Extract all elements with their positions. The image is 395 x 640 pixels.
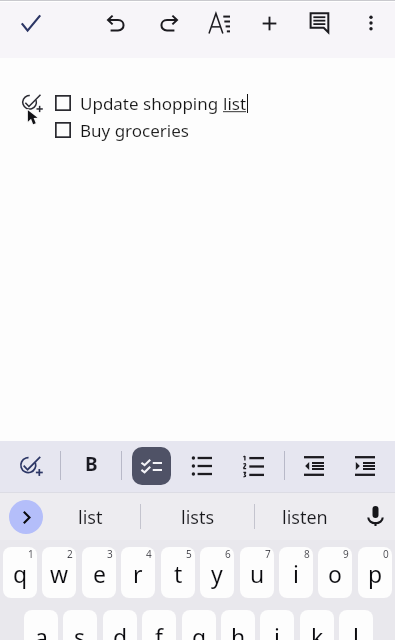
staticText: 9 [343, 547, 349, 561]
staticText: 7 [265, 547, 271, 561]
button[interactable]: lists [150, 497, 246, 537]
staticText: Update shopping [80, 92, 223, 114]
button[interactable]: More options [349, 1, 393, 45]
button[interactable]: i [279, 547, 313, 598]
staticText: 6 [225, 547, 231, 561]
staticText: 4 [146, 547, 152, 561]
button[interactable]: listen [257, 497, 353, 537]
button[interactable]: Add checklist item [11, 446, 51, 486]
button[interactable]: Increase indent [345, 446, 385, 486]
button[interactable]: Buy groceries [55, 119, 189, 141]
staticText: u [250, 558, 265, 589]
staticText: lists [181, 505, 215, 530]
button[interactable]: d [103, 610, 137, 640]
staticText: f [155, 621, 163, 640]
staticText: 2 [67, 547, 73, 561]
staticText: j [274, 621, 280, 640]
staticText: o [328, 558, 342, 589]
button[interactable]: Numbered list [233, 446, 273, 486]
button[interactable]: r [121, 547, 155, 598]
button[interactable]: Bold [79, 451, 103, 475]
staticText: h [231, 621, 246, 640]
button[interactable]: w [42, 547, 76, 598]
button[interactable]: Voice input [359, 500, 391, 532]
staticText: q [13, 558, 28, 589]
button[interactable]: Update shopping [55, 92, 248, 114]
button[interactable]: a [24, 610, 58, 640]
button[interactable]: y [200, 547, 234, 598]
button[interactable]: t [161, 547, 195, 598]
staticText: a [35, 621, 48, 640]
staticText: g [192, 621, 207, 640]
button[interactable]: Add checklist item [22, 93, 43, 114]
button[interactable]: Bulleted list [182, 446, 222, 486]
button[interactable]: Comment [298, 0, 342, 44]
staticText: p [368, 558, 383, 589]
staticText: 1 [28, 547, 34, 561]
staticText: l [353, 621, 359, 640]
button[interactable]: Checklist [132, 447, 171, 485]
staticText: 0 [383, 547, 389, 561]
button[interactable]: list [42, 497, 138, 537]
button[interactable]: u [240, 547, 274, 598]
staticText: list [223, 92, 247, 114]
staticText: 3 [107, 547, 113, 561]
staticText: B [85, 451, 98, 475]
staticText: k [311, 621, 324, 640]
button[interactable]: e [82, 547, 116, 598]
button[interactable]: f [142, 610, 176, 640]
button[interactable]: Done [9, 1, 53, 45]
staticText: d [113, 621, 128, 640]
staticText: Buy groceries [80, 119, 189, 141]
button[interactable]: Insert [247, 1, 291, 45]
button[interactable]: q [3, 547, 37, 598]
button[interactable]: o [318, 547, 352, 598]
button[interactable]: Undo [95, 2, 139, 46]
button[interactable]: Decrease indent [294, 446, 334, 486]
staticText: 8 [304, 547, 310, 561]
staticText: list [78, 505, 103, 530]
staticText: r [133, 558, 143, 589]
button[interactable]: Redo [146, 2, 190, 46]
button[interactable]: s [63, 610, 97, 640]
staticText: listen [282, 505, 328, 530]
staticText: s [74, 621, 86, 640]
staticText: w [50, 558, 69, 589]
button[interactable]: g [182, 610, 216, 640]
button[interactable]: k [300, 610, 334, 640]
button[interactable]: l [339, 610, 373, 640]
button[interactable]: h [221, 610, 255, 640]
button[interactable]: Expand toolbar [9, 500, 43, 534]
button[interactable]: p [358, 547, 392, 598]
button[interactable]: Text formatting [197, 1, 241, 45]
staticText: 5 [186, 547, 192, 561]
staticText: i [293, 558, 299, 589]
staticText: e [93, 558, 106, 589]
button[interactable]: j [260, 610, 294, 640]
staticText: y [211, 558, 223, 589]
staticText: t [174, 558, 183, 589]
